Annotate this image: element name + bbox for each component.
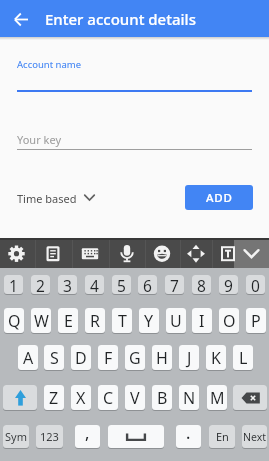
staticText: 1 <box>9 275 18 294</box>
button[interactable]: D <box>71 345 91 370</box>
staticText: 7 <box>170 275 179 294</box>
button[interactable]: K <box>206 345 226 370</box>
button[interactable]: T <box>112 308 132 333</box>
button[interactable] <box>233 385 267 410</box>
staticText: D <box>75 347 87 369</box>
staticText: E <box>64 310 73 332</box>
button[interactable] <box>234 238 269 270</box>
staticText: Sym <box>5 429 27 444</box>
button[interactable]: C <box>98 385 118 410</box>
button[interactable]: ADD <box>185 185 253 210</box>
staticText: 9 <box>224 275 233 294</box>
button[interactable]: 2 <box>31 275 50 294</box>
staticText: J <box>187 347 192 369</box>
staticText: X <box>76 387 86 409</box>
staticText: 2 <box>36 275 45 294</box>
staticText: I <box>199 310 205 332</box>
button[interactable]: Sym <box>3 425 29 448</box>
button[interactable]: R <box>85 308 105 333</box>
button[interactable]: , <box>75 425 100 448</box>
button[interactable]: F <box>98 345 118 370</box>
staticText: , <box>85 425 90 444</box>
button[interactable]: 6 <box>138 275 157 294</box>
staticText: 123 <box>40 429 59 444</box>
staticText: C <box>103 387 114 409</box>
button[interactable]: 0 <box>246 275 265 294</box>
button[interactable]: P <box>246 308 266 333</box>
button[interactable]: 5 <box>112 275 131 294</box>
staticText: P <box>251 310 261 332</box>
button[interactable] <box>146 238 178 270</box>
button[interactable]: L <box>233 345 253 370</box>
staticText: U <box>170 310 182 332</box>
staticText: M <box>210 387 225 409</box>
staticText: Y <box>144 310 154 332</box>
staticText: 0 <box>251 275 260 294</box>
button[interactable]: U <box>166 308 186 333</box>
button[interactable]: . <box>176 425 201 448</box>
staticText: W <box>34 310 49 332</box>
button[interactable]: V <box>125 385 145 410</box>
button[interactable] <box>14 183 104 209</box>
staticText: H <box>156 347 168 369</box>
button[interactable]: H <box>152 345 172 370</box>
staticText: K <box>211 347 221 369</box>
button[interactable]: Y <box>139 308 159 333</box>
button[interactable]: 1 <box>4 275 23 294</box>
button[interactable]: 7 <box>165 275 184 294</box>
button[interactable]: En <box>209 425 235 448</box>
button[interactable]: J <box>179 345 199 370</box>
button[interactable]: Q <box>4 308 24 333</box>
staticText: Enter account details <box>45 9 196 29</box>
staticText: T <box>118 310 127 332</box>
button[interactable]: 4 <box>85 275 104 294</box>
button[interactable] <box>10 8 32 30</box>
button[interactable]: 9 <box>219 275 238 294</box>
staticText: A <box>23 347 34 369</box>
button[interactable]: 3 <box>58 275 77 294</box>
button[interactable]: X <box>71 385 91 410</box>
button[interactable] <box>3 385 37 410</box>
staticText: . <box>186 425 191 444</box>
staticText: L <box>239 347 248 369</box>
button[interactable]: I <box>192 308 212 333</box>
staticText: Your key <box>17 132 61 147</box>
staticText: 4 <box>90 275 99 294</box>
staticText: Account name <box>17 58 82 71</box>
staticText: N <box>183 387 196 409</box>
button[interactable] <box>74 238 106 270</box>
button[interactable] <box>180 238 212 270</box>
button[interactable]: M <box>207 385 227 410</box>
button[interactable]: A <box>18 345 38 370</box>
staticText: 3 <box>63 275 72 294</box>
staticText: Z <box>49 387 59 409</box>
button[interactable] <box>1 238 33 270</box>
button[interactable] <box>14 48 255 92</box>
staticText: ADD <box>206 190 233 206</box>
button[interactable]: Next <box>242 425 267 448</box>
staticText: 8 <box>197 275 206 294</box>
button[interactable] <box>37 238 69 270</box>
button[interactable]: B <box>152 385 172 410</box>
staticText: S <box>50 347 59 369</box>
button[interactable]: Z <box>44 385 64 410</box>
staticText: 5 <box>117 275 126 294</box>
button[interactable] <box>111 238 143 270</box>
button[interactable] <box>108 425 164 448</box>
staticText: Next <box>243 430 267 444</box>
button[interactable] <box>212 238 244 270</box>
button[interactable]: 123 <box>36 425 63 448</box>
button[interactable]: S <box>44 345 64 370</box>
staticText: O <box>223 310 236 332</box>
button[interactable] <box>14 122 255 151</box>
staticText: Time based <box>17 191 77 206</box>
button[interactable]: W <box>31 308 51 333</box>
button[interactable]: 8 <box>192 275 211 294</box>
staticText: V <box>130 387 140 409</box>
button[interactable]: E <box>58 308 78 333</box>
button[interactable]: N <box>179 385 199 410</box>
staticText: En <box>216 429 229 444</box>
staticText: R <box>90 310 100 332</box>
button[interactable]: O <box>219 308 239 333</box>
button[interactable]: G <box>125 345 145 370</box>
